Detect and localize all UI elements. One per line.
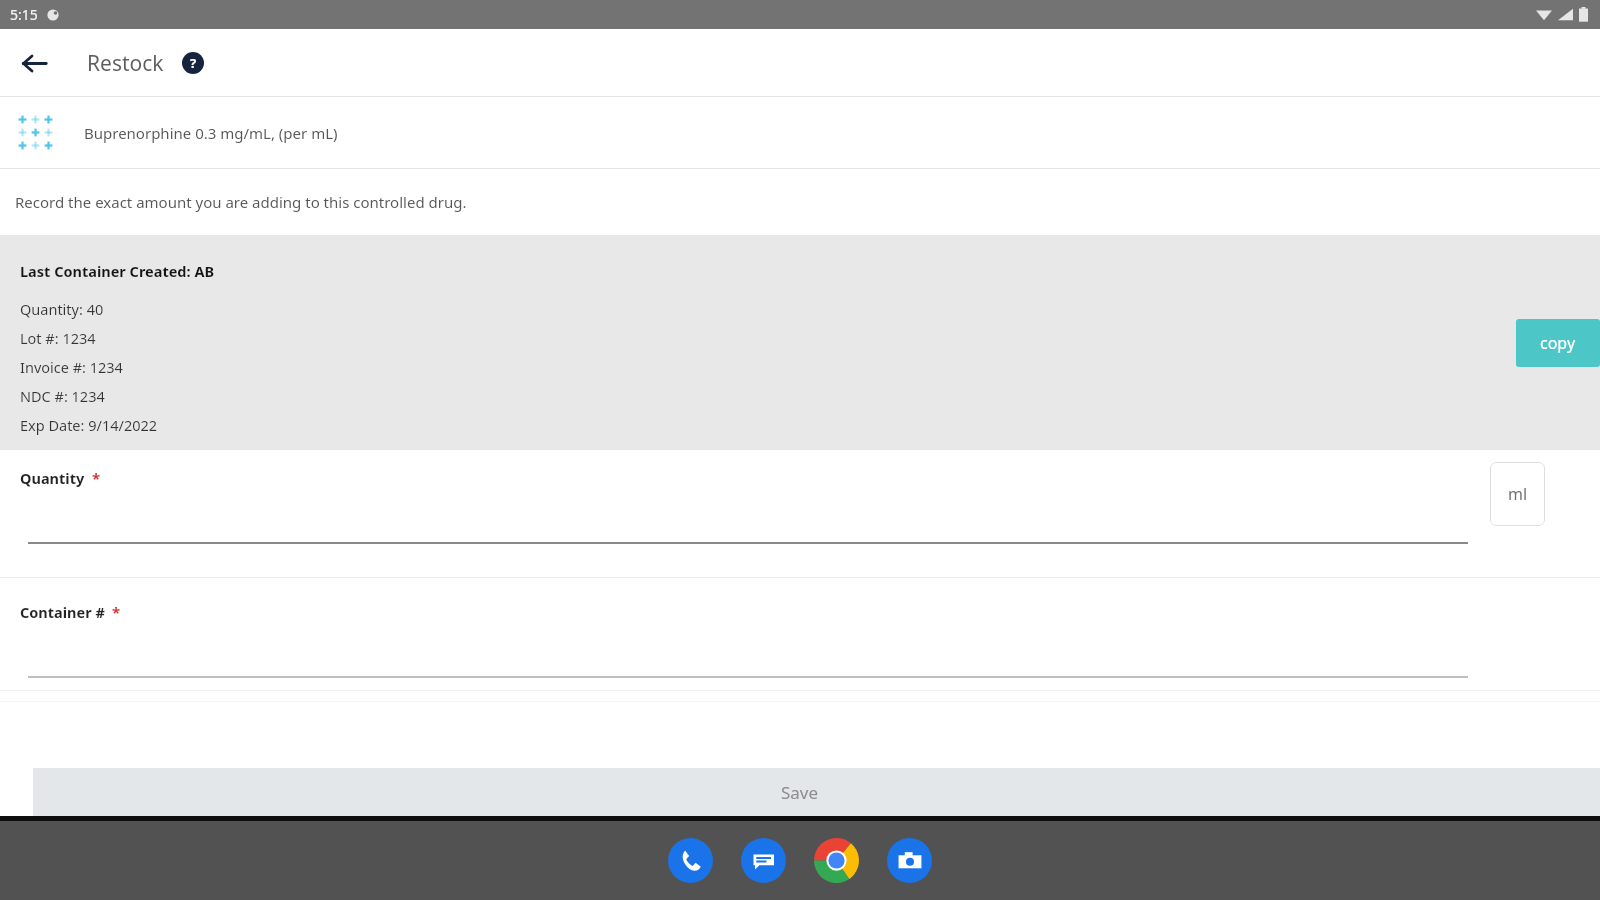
button[interactable]: Messages xyxy=(741,838,786,883)
button[interactable]: Help xyxy=(177,47,209,79)
button[interactable]: Chrome xyxy=(814,838,859,883)
staticText: copy xyxy=(1540,332,1576,354)
staticText: * xyxy=(92,468,101,488)
staticText: Container # xyxy=(20,602,105,622)
staticText: Invoice #: 1234 xyxy=(20,357,123,377)
staticText: Quantity: 40 xyxy=(20,299,104,319)
button[interactable]: Back xyxy=(11,40,57,86)
staticText: Record the exact amount you are adding t… xyxy=(15,192,467,212)
button[interactable]: copy xyxy=(1516,319,1600,367)
button[interactable]: ml xyxy=(1490,462,1545,526)
staticText: Lot #: 1234 xyxy=(20,328,96,348)
button[interactable]: Phone xyxy=(668,838,713,883)
staticText: Save xyxy=(781,781,819,804)
staticText: Buprenorphine 0.3 mg/mL, (per mL) xyxy=(84,123,338,143)
button[interactable]: Save xyxy=(33,768,1600,816)
staticText: * xyxy=(112,602,121,622)
staticText: Quantity xyxy=(20,468,85,488)
staticText: ? xyxy=(190,54,197,72)
staticText: 5:15 xyxy=(10,5,38,24)
staticText: ml xyxy=(1508,483,1528,505)
button[interactable]: Camera xyxy=(887,838,932,883)
staticText: Restock xyxy=(87,49,164,78)
staticText: Last Container Created: AB xyxy=(20,261,215,281)
staticText: Exp Date: 9/14/2022 xyxy=(20,415,158,435)
staticText: NDC #: 1234 xyxy=(20,386,105,406)
